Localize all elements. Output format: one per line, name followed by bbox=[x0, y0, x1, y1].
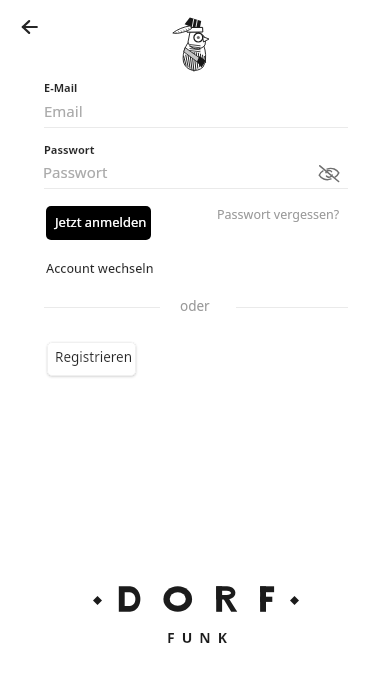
staticText: Email bbox=[44, 101, 83, 121]
staticText: Registrieren bbox=[55, 348, 133, 366]
staticText: Account wechseln bbox=[46, 260, 154, 277]
staticText: FUNK bbox=[167, 628, 234, 647]
staticText: oder bbox=[180, 297, 210, 315]
button[interactable]: Show password bbox=[313, 157, 345, 189]
staticText: Passwort bbox=[44, 142, 95, 157]
button[interactable]: Back bbox=[13, 11, 45, 43]
button[interactable]: Registrieren bbox=[47, 342, 136, 376]
staticText: Passwort bbox=[43, 162, 108, 182]
button[interactable]: Jetzt anmelden bbox=[46, 206, 151, 240]
staticText: E-Mail bbox=[44, 80, 78, 95]
button[interactable]: Passwort vergessen? bbox=[212, 201, 345, 228]
staticText: Passwort vergessen? bbox=[217, 206, 340, 223]
staticText: Jetzt anmelden bbox=[55, 213, 147, 231]
button[interactable]: Account wechseln bbox=[41, 255, 159, 282]
